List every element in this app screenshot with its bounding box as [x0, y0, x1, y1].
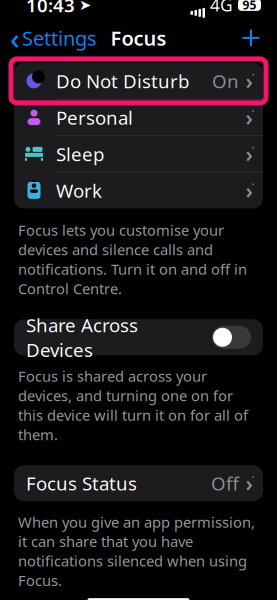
- staticText: ›: [245, 67, 252, 95]
- button[interactable]: Focus Status: [14, 465, 263, 501]
- button[interactable]: ‹: [0, 12, 97, 63]
- staticText: ›: [245, 469, 252, 497]
- staticText: Personal: [56, 105, 133, 130]
- staticText: ‹: [10, 18, 20, 57]
- staticText: ›: [245, 103, 252, 131]
- staticText: Focus is shared across your devices, and…: [18, 366, 248, 444]
- staticText: 10:43: [26, 0, 75, 17]
- staticText: ›: [245, 140, 252, 168]
- staticText: Focus lets you customise your devices an…: [18, 220, 247, 298]
- staticText: ›: [245, 176, 252, 204]
- staticText: Focus Status: [26, 471, 137, 496]
- button[interactable]: Sleep: [14, 136, 263, 172]
- button[interactable]: Do Not Disturb: [14, 63, 263, 99]
- staticText: When you give an app permission, it can …: [18, 512, 255, 590]
- button[interactable]: Personal: [14, 99, 263, 135]
- staticText: On: [212, 68, 239, 93]
- staticText: 4G: [210, 0, 233, 16]
- staticText: Off: [211, 471, 239, 496]
- staticText: ➤: [79, 0, 91, 13]
- staticText: Work: [56, 178, 102, 203]
- staticText: Do Not Disturb: [56, 68, 189, 93]
- button[interactable]: Share Across Devices: [212, 326, 251, 349]
- staticText: Settings: [22, 25, 97, 51]
- button[interactable]: Work: [14, 172, 263, 208]
- staticText: Share Across Devices: [26, 312, 138, 362]
- staticText: Focus: [110, 25, 166, 51]
- staticText: 95: [242, 0, 256, 13]
- button[interactable]: Add Focus: [231, 23, 271, 53]
- staticText: Sleep: [56, 141, 104, 166]
